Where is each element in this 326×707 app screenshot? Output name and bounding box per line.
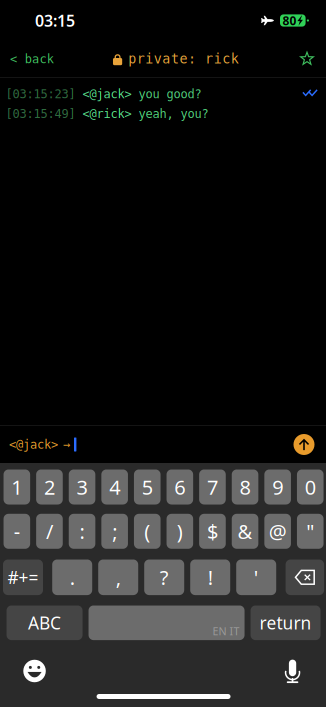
staticText: [03:15:23] [5,87,82,101]
button[interactable]: 4 [101,469,128,504]
staticText: <@jack> [9,437,58,451]
staticText: 8 [239,474,250,500]
button[interactable]: / [36,514,63,549]
button[interactable]: Dictation [270,656,314,686]
staticText: ) [177,518,183,545]
button[interactable]: ; [101,514,128,549]
staticText: / [46,518,53,545]
staticText: #+= [7,566,38,589]
staticText: ( [144,518,150,545]
button[interactable]: ? [144,559,184,595]
button[interactable]: - [3,514,30,549]
button[interactable]: ( [134,514,160,549]
button[interactable]: 6 [166,469,193,504]
staticText: you good? [138,87,201,101]
button[interactable]: 8 [232,469,258,504]
staticText: ; [112,518,117,545]
staticText: 0 [305,474,316,500]
button[interactable]: Send [290,430,318,458]
button[interactable]: #+= [3,559,43,595]
button[interactable]: : [69,514,95,549]
button[interactable]: " [297,514,324,549]
staticText: : [79,518,84,545]
staticText: & [237,518,252,545]
staticText: 3 [76,474,87,500]
staticText: . [70,564,75,591]
button[interactable]: 0 [297,469,324,504]
button[interactable]: return [250,605,320,640]
staticText: ? [160,564,169,591]
staticText: private: rick [128,51,239,67]
button[interactable]: Emoji keyboard [12,656,56,686]
staticText: < back [10,52,54,66]
staticText: 2 [44,474,55,500]
staticText: ! [208,564,213,591]
staticText: 9 [272,474,283,500]
staticText: @ [269,518,287,545]
button[interactable]: 7 [199,469,226,504]
staticText: 03:15 [35,10,75,31]
button[interactable]: 1 [3,469,30,504]
staticText: → [63,437,70,451]
button[interactable]: $ [199,514,226,549]
staticText: yeah, you? [138,107,208,121]
staticText: 7 [207,474,218,500]
button[interactable]: . [52,559,92,595]
button[interactable]: ! [190,559,230,595]
staticText: [03:15:49] [5,107,82,121]
staticText: <@rick> [82,107,138,121]
button[interactable]: ' [236,559,276,595]
staticText: - [14,518,20,545]
button[interactable]: 9 [264,469,291,504]
button[interactable]: & [232,514,258,549]
button[interactable]: EN IT [88,605,244,640]
staticText: 1 [11,474,22,500]
button[interactable]: 3 [69,469,95,504]
staticText: <@jack> [82,87,138,101]
staticText: 80 [283,12,297,28]
button[interactable]: Delete [286,559,324,595]
staticText: 6 [174,474,185,500]
staticText: " [306,518,314,545]
staticText: ' [254,564,259,591]
button[interactable]: ABC [6,605,82,640]
button[interactable]: ) [166,514,193,549]
staticText: $ [207,518,218,545]
button[interactable]: @ [264,514,291,549]
staticText: ABC [28,611,61,634]
staticText: return [259,611,311,634]
staticText: EN IT [212,624,239,638]
staticText: 4 [109,474,120,500]
staticText: 5 [142,474,153,500]
staticText: , [116,564,121,591]
button[interactable]: 2 [36,469,63,504]
button[interactable]: , [98,559,138,595]
button[interactable]: < back [0,43,58,75]
button[interactable]: Favorite [294,43,326,75]
button[interactable]: 5 [134,469,160,504]
